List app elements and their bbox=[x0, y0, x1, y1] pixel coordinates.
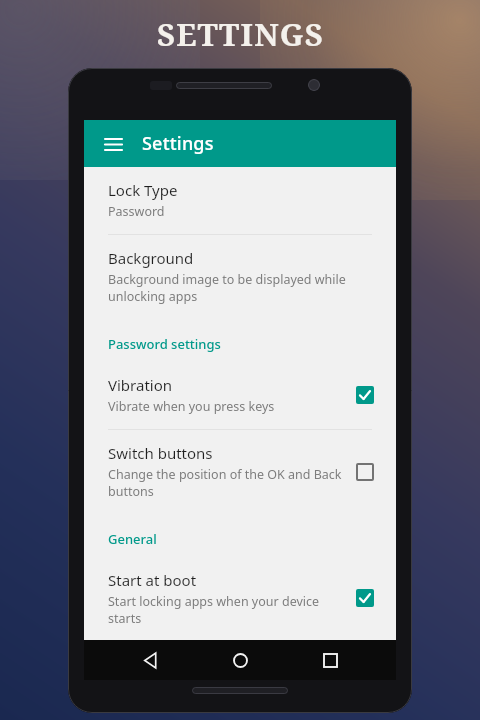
staticText: Background bbox=[108, 248, 194, 268]
button[interactable]: Open navigation menu bbox=[98, 129, 128, 159]
staticText: Password settings bbox=[108, 335, 221, 353]
staticText: Vibrate when you press keys bbox=[108, 398, 275, 415]
staticText: Vibration bbox=[108, 375, 173, 395]
staticText: Lock Type bbox=[108, 180, 178, 200]
button[interactable]: Back bbox=[128, 640, 174, 680]
button[interactable]: Start at boot bbox=[84, 557, 396, 640]
staticText: SETTINGS bbox=[157, 13, 324, 55]
button[interactable]: Home bbox=[217, 640, 263, 680]
staticText: Start locking apps when your device star… bbox=[108, 593, 320, 626]
button[interactable]: Background bbox=[84, 235, 396, 319]
staticText: Change the position of the OK and Back b… bbox=[108, 466, 342, 500]
button[interactable]: Recent apps bbox=[307, 640, 353, 680]
staticText: General bbox=[108, 530, 157, 548]
staticText: Switch buttons bbox=[108, 443, 213, 463]
button[interactable]: Lock Type bbox=[84, 167, 396, 234]
staticText: Start at boot bbox=[108, 570, 197, 590]
staticText: Password bbox=[108, 203, 165, 220]
staticText: Background image to be displayed while u… bbox=[108, 271, 346, 305]
staticText: Settings bbox=[142, 131, 214, 156]
button[interactable]: Vibration bbox=[84, 362, 396, 429]
button[interactable]: Switch buttons bbox=[84, 430, 396, 514]
